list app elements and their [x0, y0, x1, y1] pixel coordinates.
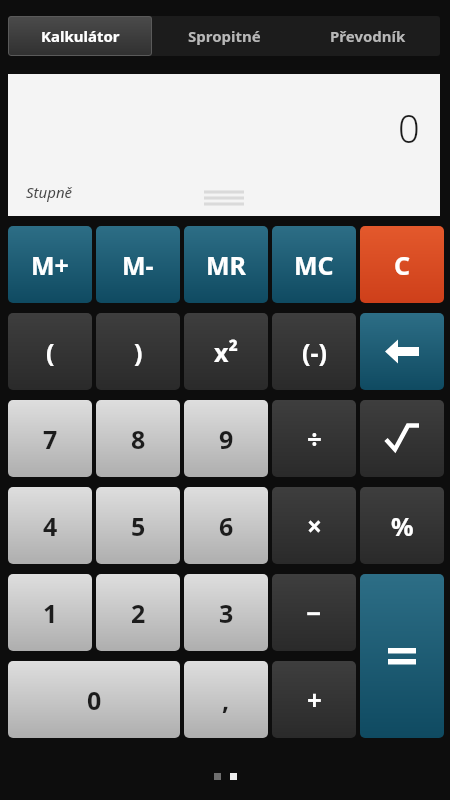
button[interactable]: MR	[184, 226, 268, 303]
button[interactable]: 9	[184, 400, 268, 477]
staticText: −	[306, 595, 322, 630]
button[interactable]: −	[272, 574, 356, 651]
button[interactable]: 2	[96, 574, 180, 651]
button[interactable]: Square root	[360, 400, 444, 477]
button[interactable]: (-)	[272, 313, 356, 390]
staticText: 1	[43, 596, 58, 630]
button[interactable]: ,	[184, 661, 268, 738]
staticText: 3	[219, 596, 234, 630]
staticText: 0	[398, 102, 420, 154]
button[interactable]: MC	[272, 226, 356, 303]
button[interactable]: 7	[8, 400, 92, 477]
staticText: Převodník	[330, 26, 406, 46]
staticText: 8	[131, 422, 146, 456]
button[interactable]: 0	[8, 661, 180, 738]
button[interactable]: ÷	[272, 400, 356, 477]
button[interactable]: 4	[8, 487, 92, 564]
button[interactable]: Equals	[360, 574, 444, 738]
staticText: M+	[31, 248, 69, 282]
staticText: MC	[294, 248, 334, 282]
button[interactable]: Kalkulátor	[8, 16, 152, 56]
button[interactable]: Spropitné	[152, 16, 296, 56]
staticText: 5	[131, 509, 146, 543]
button[interactable]: 3	[184, 574, 268, 651]
staticText: 6	[219, 509, 234, 543]
staticText: Kalkulátor	[41, 26, 120, 46]
button[interactable]: M+	[8, 226, 92, 303]
staticText: 0	[87, 683, 102, 717]
button[interactable]: x²	[184, 313, 268, 390]
staticText: )	[134, 335, 143, 369]
button[interactable]: 8	[96, 400, 180, 477]
staticText: ÷	[307, 421, 322, 456]
staticText: C	[394, 248, 411, 282]
staticText: 2	[131, 596, 146, 630]
button[interactable]: %	[360, 487, 444, 564]
staticText: (-)	[302, 335, 327, 369]
button[interactable]: Backspace	[360, 313, 444, 390]
button[interactable]: +	[272, 661, 356, 738]
staticText: %	[391, 509, 414, 543]
button[interactable]: 6	[184, 487, 268, 564]
staticText: Stupně	[26, 182, 73, 202]
button[interactable]: C	[360, 226, 444, 303]
staticText: MR	[206, 248, 246, 282]
button[interactable]: ×	[272, 487, 356, 564]
button[interactable]: (	[8, 313, 92, 390]
staticText: 7	[43, 422, 58, 456]
button[interactable]: 0	[8, 74, 440, 216]
staticText: ×	[307, 508, 322, 543]
button[interactable]: 1	[8, 574, 92, 651]
button[interactable]: 5	[96, 487, 180, 564]
button[interactable]: M-	[96, 226, 180, 303]
staticText: 9	[219, 422, 234, 456]
staticText: x²	[214, 335, 238, 369]
staticText: M-	[122, 248, 154, 282]
staticText: 4	[43, 509, 58, 543]
button[interactable]: )	[96, 313, 180, 390]
staticText: +	[307, 682, 322, 717]
staticText: ,	[222, 683, 230, 717]
staticText: (	[46, 335, 55, 369]
button[interactable]: Převodník	[296, 16, 440, 56]
staticText: Spropitné	[188, 26, 261, 46]
